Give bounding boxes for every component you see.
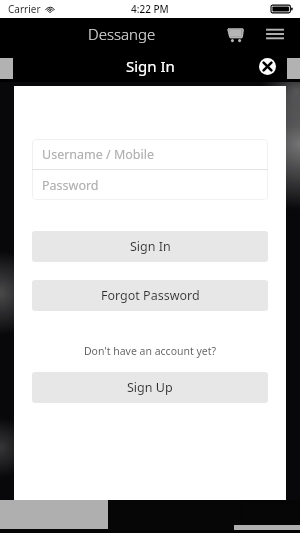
staticText: Sign In	[126, 56, 175, 76]
staticText: 4:22 PM	[131, 2, 169, 16]
staticText: Don't have an account yet?	[32, 344, 268, 358]
staticText: Username / Mobile	[42, 146, 155, 163]
button[interactable]: Cart	[220, 19, 250, 49]
button[interactable]: Menu	[260, 19, 290, 49]
button[interactable]: Password	[32, 170, 268, 200]
staticText: Forgot Password	[101, 287, 200, 304]
staticText: Sign Up	[127, 379, 173, 396]
button[interactable]: Sign In	[32, 231, 268, 262]
button[interactable]	[108, 500, 241, 533]
staticText: Carrier	[8, 2, 41, 16]
button[interactable]: Sign Up	[32, 372, 268, 403]
button[interactable]: Close	[256, 55, 278, 77]
staticText: Sign In	[130, 238, 171, 255]
button[interactable]: Username / Mobile	[32, 139, 268, 169]
staticText: Dessange	[88, 24, 156, 44]
button[interactable]: Forgot Password	[32, 280, 268, 311]
button[interactable]	[243, 504, 300, 533]
staticText: Password	[42, 177, 99, 194]
